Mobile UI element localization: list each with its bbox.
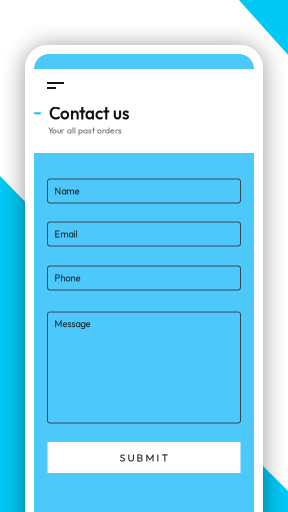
button[interactable]: Name bbox=[47, 179, 240, 203]
staticText: Your all past orders bbox=[48, 125, 122, 136]
staticText: Name bbox=[54, 185, 79, 197]
button[interactable]: Menu bbox=[34, 78, 71, 93]
staticText: S U B M I T bbox=[119, 451, 168, 464]
button[interactable]: Email bbox=[47, 222, 240, 246]
staticText: Email bbox=[54, 228, 77, 240]
staticText: Message bbox=[54, 318, 90, 330]
button[interactable]: S U B M I T bbox=[47, 442, 240, 473]
staticText: Phone bbox=[54, 272, 80, 284]
staticText: Contact us bbox=[49, 102, 129, 124]
button[interactable]: Message bbox=[47, 312, 240, 423]
button[interactable]: Phone bbox=[47, 266, 240, 290]
